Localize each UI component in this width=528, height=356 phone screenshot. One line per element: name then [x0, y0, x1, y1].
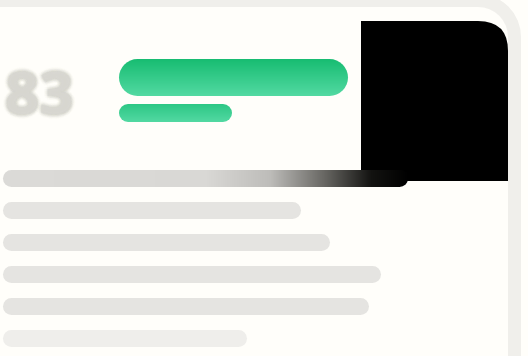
button[interactable]: Loading card content [0, 0, 528, 356]
